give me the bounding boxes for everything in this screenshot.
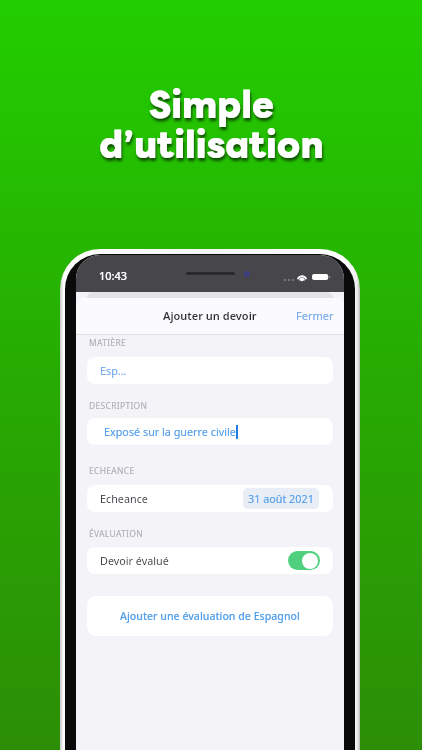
staticText: DESCRIPTION (89, 400, 148, 412)
button[interactable]: Esp... (87, 357, 333, 384)
staticText: 10:43 (99, 268, 128, 283)
button[interactable]: Devoir évalué (87, 547, 333, 574)
button[interactable]: Echeance (87, 485, 333, 512)
staticText: Devoir évalué (100, 553, 169, 568)
staticText: Esp... (100, 363, 127, 378)
staticText: Echeance (100, 491, 148, 506)
staticText: MATIÈRE (89, 337, 126, 349)
button[interactable]: Devoir évalué (288, 551, 320, 570)
staticText: Fermer (296, 308, 334, 323)
button[interactable]: Fermer (286, 300, 344, 331)
staticText: ÉVALUATION (89, 528, 143, 540)
staticText: Exposé sur la guerre civile (104, 424, 236, 439)
button[interactable]: Ajouter une évaluation de Espagnol (87, 596, 333, 636)
staticText: 31 août 2021 (248, 491, 314, 506)
button[interactable]: Exposé sur la guerre civile (87, 418, 333, 445)
staticText: ECHEANCE (89, 465, 135, 477)
staticText: Simple d’utilisation (99, 86, 324, 162)
staticText: Ajouter un devoir (163, 308, 257, 323)
staticText: Ajouter une évaluation de Espagnol (120, 609, 300, 623)
